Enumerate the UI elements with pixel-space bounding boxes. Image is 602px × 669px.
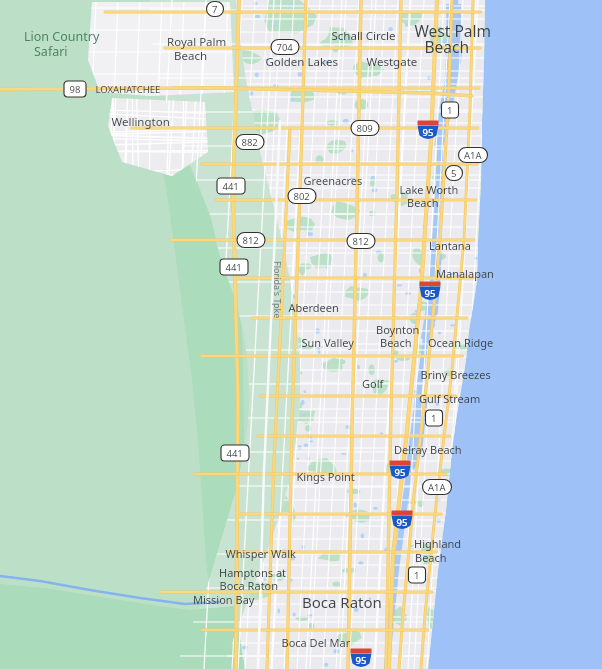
button[interactable]: Map of Palm Beach County, Florida <box>0 0 602 669</box>
